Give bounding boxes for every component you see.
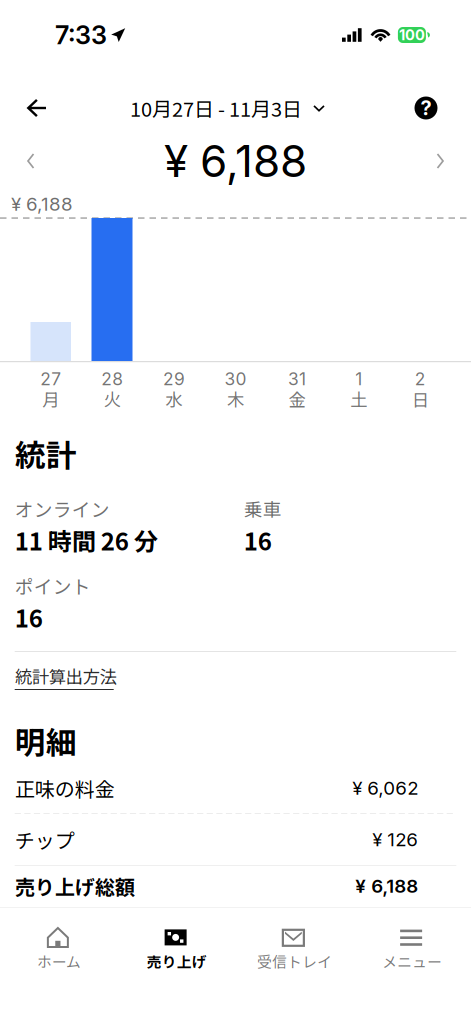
staticText: 木 [227, 386, 244, 412]
staticText: 100 [399, 26, 425, 44]
staticText: 統計算出方法 [15, 663, 117, 689]
staticText: 7:33 [55, 20, 107, 50]
staticText: 27 [40, 368, 61, 389]
staticText: 土 [350, 386, 367, 412]
staticText: 日 [412, 386, 429, 412]
staticText: ¥ 6,188 [11, 193, 73, 215]
staticText: 水 [165, 386, 182, 412]
staticText: 正味の料金 [15, 773, 115, 802]
staticText: ¥ 6,188 [164, 134, 307, 188]
staticText: オンライン [15, 495, 110, 522]
staticText: チップ [15, 825, 75, 854]
staticText: 売り上げ [147, 950, 207, 972]
button[interactable]: 売り上げ [118, 908, 236, 976]
staticText: 乗車 [244, 495, 282, 522]
button[interactable]: 受信トレイ [235, 908, 353, 976]
button[interactable]: 10月27日 - 11月3日 [130, 86, 325, 130]
staticText: 11 時間 26 分 [15, 523, 158, 557]
staticText: ホーム [37, 950, 81, 972]
staticText: ¥ 126 [372, 828, 418, 851]
staticText: 28 [101, 368, 123, 389]
staticText: ポイント [15, 572, 91, 599]
staticText: 16 [15, 600, 43, 634]
staticText: 31 [288, 368, 306, 389]
button[interactable]: 次の週 [413, 130, 467, 192]
staticText: 2 [415, 368, 426, 389]
staticText: 受信トレイ [257, 950, 332, 972]
button[interactable]: 戻る [0, 86, 74, 130]
staticText: 10月27日 - 11月3日 [130, 93, 302, 122]
staticText: 1 [355, 368, 362, 389]
staticText: 月 [42, 386, 59, 412]
staticText: 29 [163, 368, 185, 389]
staticText: ¥ 6,188 [355, 875, 418, 897]
staticText: 30 [224, 368, 246, 389]
staticText: 16 [244, 523, 272, 557]
staticText: メニュー [382, 950, 442, 972]
staticText: 統計 [15, 431, 77, 476]
button[interactable]: ホーム [0, 908, 118, 976]
button[interactable]: ヘルプ [381, 86, 471, 130]
button[interactable]: メニュー [353, 908, 471, 976]
staticText: 売り上げ総額 [15, 871, 135, 900]
button[interactable]: 前の週 [4, 130, 58, 192]
staticText: ¥ 6,062 [352, 777, 418, 799]
button[interactable]: 統計算出方法 [15, 652, 117, 690]
staticText: 金 [289, 386, 306, 412]
staticText: 明細 [15, 718, 77, 763]
staticText: ? [420, 96, 431, 120]
staticText: 火 [104, 386, 121, 412]
